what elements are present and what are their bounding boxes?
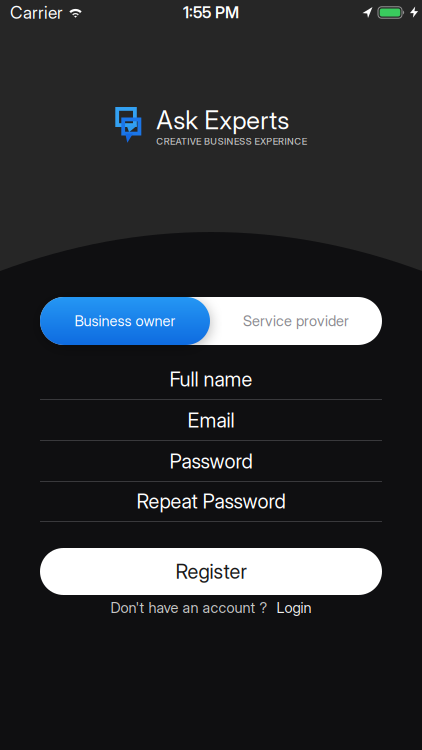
button[interactable]: Business owner — [40, 297, 210, 345]
staticText: 1:55 PM — [183, 3, 239, 22]
staticText: Carrier — [10, 2, 63, 23]
staticText: Repeat Password — [136, 489, 285, 513]
button[interactable]: Login — [276, 599, 311, 616]
staticText: CREATIVE BUSINESS EXPERINCE — [156, 136, 307, 147]
staticText: Don't have an account ? — [110, 599, 267, 616]
staticText: Password — [169, 449, 252, 473]
staticText: Login — [276, 599, 311, 616]
staticText: Full name — [169, 367, 252, 391]
staticText: Business owner — [74, 312, 175, 330]
textField[interactable]: Password — [40, 441, 382, 482]
button[interactable]: Service provider — [210, 297, 382, 345]
staticText: Email — [187, 408, 234, 432]
textField[interactable]: Repeat Password — [40, 482, 382, 522]
staticText: Ask Experts — [156, 105, 289, 135]
staticText: Register — [175, 560, 246, 583]
textField[interactable]: Full name — [40, 359, 382, 400]
button[interactable]: Register — [40, 548, 382, 595]
textField[interactable]: Email — [40, 400, 382, 441]
staticText: Service provider — [243, 312, 349, 330]
